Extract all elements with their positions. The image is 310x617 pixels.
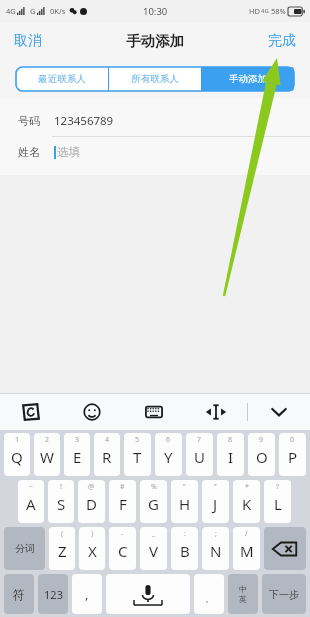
button[interactable]: #	[109, 480, 136, 523]
button[interactable]: 9	[248, 433, 275, 476]
button[interactable]: Input method logo	[0, 394, 61, 430]
button[interactable]: 123	[38, 574, 68, 614]
staticText: J	[213, 494, 218, 514]
staticText: 6	[166, 435, 171, 445]
button[interactable]: -	[109, 527, 136, 570]
staticText: 1	[15, 435, 20, 445]
button[interactable]: “	[171, 480, 198, 523]
staticText: 7	[197, 435, 202, 445]
button[interactable]: ~	[18, 480, 44, 523]
button[interactable]: Voice input	[106, 574, 190, 614]
staticText: V	[149, 541, 159, 561]
staticText: ~	[29, 482, 34, 492]
staticText: A	[26, 494, 36, 514]
staticText: Z	[58, 541, 67, 561]
button[interactable]: %	[140, 480, 167, 523]
staticText: 中 英	[239, 584, 247, 604]
button[interactable]: Keyboard layout	[123, 394, 185, 430]
button[interactable]: :	[171, 527, 198, 570]
button[interactable]: 。	[194, 574, 224, 614]
button[interactable]: ,	[72, 574, 102, 614]
staticText: G	[148, 494, 159, 514]
staticText: 4	[105, 435, 110, 445]
staticText: B	[180, 541, 190, 561]
staticText: C	[118, 541, 128, 561]
staticText: 3	[75, 435, 80, 445]
button[interactable]: Backspace	[264, 527, 306, 570]
staticText: _	[152, 529, 156, 539]
button[interactable]: /	[233, 527, 260, 570]
staticText: M	[240, 541, 254, 561]
staticText: 0K/s	[50, 6, 66, 16]
button[interactable]: Emoji	[61, 394, 123, 430]
staticText: D	[86, 494, 97, 514]
button[interactable]: )	[79, 527, 105, 570]
button[interactable]: (	[49, 527, 75, 570]
staticText: 最近联系人	[38, 73, 86, 85]
staticText: R	[102, 447, 112, 467]
staticText: “	[183, 482, 186, 492]
button[interactable]: ”	[202, 480, 229, 523]
staticText: O	[256, 447, 268, 467]
staticText: 4G	[261, 7, 269, 15]
button[interactable]: 分词	[4, 527, 45, 570]
staticText: 符	[13, 587, 25, 602]
staticText: Y	[164, 447, 173, 467]
staticText: 。	[205, 593, 214, 604]
staticText: ?	[276, 482, 280, 492]
staticText: 所有联系人	[131, 73, 179, 85]
button[interactable]: 8	[217, 433, 244, 476]
staticText: 完成	[268, 32, 296, 50]
staticText: S	[57, 494, 66, 514]
staticText: G	[30, 6, 36, 16]
staticText: H	[179, 494, 191, 514]
staticText: L	[274, 494, 282, 514]
staticText: 姓名	[18, 145, 40, 159]
button[interactable]: 7	[186, 433, 213, 476]
button[interactable]: *	[233, 480, 260, 523]
staticText: HD	[249, 6, 261, 16]
staticText: P	[288, 447, 298, 467]
button[interactable]: _	[140, 527, 167, 570]
staticText: 0	[290, 435, 295, 445]
button[interactable]: 下一步	[262, 574, 306, 614]
staticText: /	[245, 529, 248, 539]
button[interactable]: 6	[155, 433, 182, 476]
staticText: N	[210, 541, 222, 561]
button[interactable]: ;	[202, 527, 229, 570]
button[interactable]: Hide keyboard	[248, 394, 310, 430]
button[interactable]: ?	[264, 480, 291, 523]
button[interactable]: 3	[64, 433, 90, 476]
staticText: I	[228, 447, 234, 467]
staticText: 号码	[18, 114, 40, 128]
button[interactable]: 完成	[254, 24, 310, 58]
staticText: K	[242, 494, 252, 514]
button[interactable]: 2	[34, 433, 60, 476]
button[interactable]: !	[48, 480, 74, 523]
staticText: E	[73, 447, 82, 467]
button[interactable]: Move cursor	[185, 394, 247, 430]
staticText: 手动添加	[126, 32, 184, 50]
staticText: ;	[215, 529, 217, 539]
staticText: 123456789	[54, 113, 114, 129]
button[interactable]: 号码	[0, 106, 310, 136]
staticText: 选填	[57, 145, 80, 159]
button[interactable]: 取消	[0, 24, 56, 58]
button[interactable]: 姓名	[0, 137, 310, 167]
staticText: Q	[11, 447, 23, 467]
button[interactable]: 所有联系人	[109, 67, 201, 91]
staticText: U	[194, 447, 205, 467]
button[interactable]: 最近联系人	[16, 67, 108, 91]
button[interactable]: 符	[4, 574, 34, 614]
button[interactable]: 1	[4, 433, 30, 476]
button[interactable]: @	[78, 480, 105, 523]
button[interactable]: 4	[94, 433, 120, 476]
staticText: 4G	[6, 6, 16, 16]
button[interactable]: 5	[124, 433, 151, 476]
button[interactable]: 中 英	[228, 574, 258, 614]
button[interactable]: 0	[279, 433, 306, 476]
staticText: 分词	[15, 542, 35, 555]
staticText: T	[133, 447, 142, 467]
button[interactable]: 手动添加	[202, 67, 294, 91]
staticText: F	[119, 494, 127, 514]
